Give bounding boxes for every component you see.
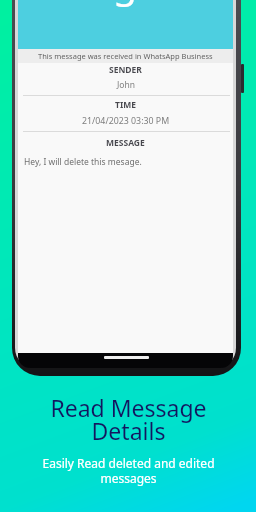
staticText: 3: [115, 0, 136, 18]
staticText: Hey, I will delete this mesage.: [24, 156, 142, 168]
staticText: MESSAGE: [106, 137, 145, 149]
staticText: Easily Read deleted and edited messages: [42, 455, 215, 486]
staticText: TIME: [115, 99, 136, 111]
staticText: This message was received in WhatsApp Bu…: [38, 51, 213, 61]
staticText: SENDER: [109, 64, 142, 76]
staticText: John: [117, 79, 135, 91]
staticText: Read Message Details: [50, 392, 207, 447]
staticText: 21/04/2023 03:30 PM: [82, 115, 170, 127]
